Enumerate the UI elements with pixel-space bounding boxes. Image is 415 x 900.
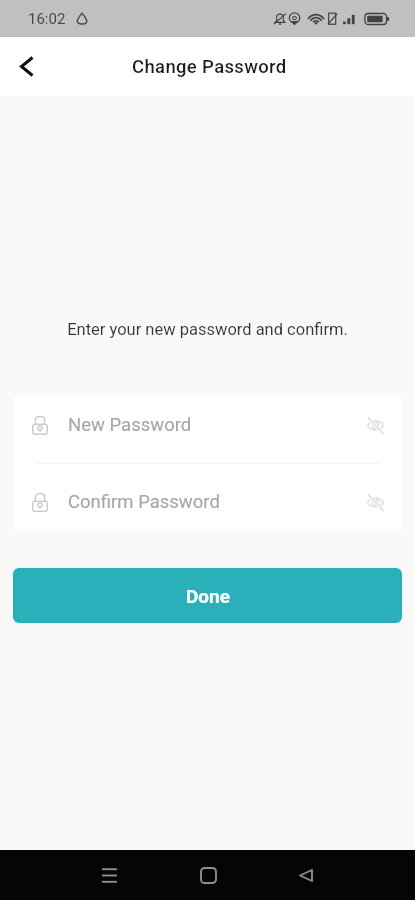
staticText: Enter your new password and confirm.	[0, 320, 415, 339]
button[interactable]: Confirm Password	[13, 464, 402, 531]
button[interactable]: Show password	[360, 487, 390, 517]
button[interactable]: Home	[186, 853, 230, 897]
button[interactable]: Done	[13, 568, 402, 623]
button[interactable]: Back	[284, 853, 328, 897]
staticText: Done	[186, 585, 230, 607]
button[interactable]: Back	[7, 48, 45, 86]
staticText: Change Password	[132, 56, 287, 78]
staticText: Confirm Password	[68, 491, 220, 513]
staticText: 16:02	[28, 10, 66, 28]
button[interactable]: Recent apps	[87, 853, 131, 897]
staticText: New Password	[68, 414, 192, 436]
button[interactable]: Show password	[360, 410, 390, 440]
button[interactable]: New Password	[13, 396, 402, 463]
